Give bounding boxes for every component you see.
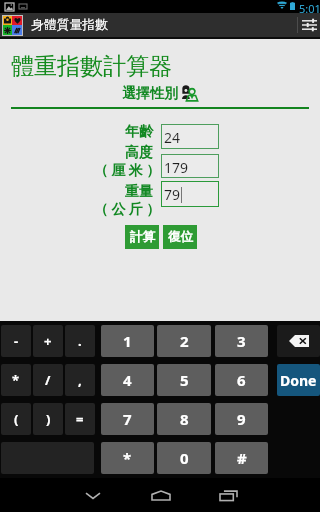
button[interactable]: * (1, 364, 31, 396)
button[interactable]: Back (71, 478, 114, 512)
staticText: / (45, 371, 51, 389)
staticText: . (78, 332, 82, 350)
button[interactable]: / (33, 364, 63, 396)
staticText: 8 (180, 409, 189, 429)
staticText: ( (14, 410, 19, 428)
button[interactable]: = (65, 403, 95, 435)
button[interactable]: 5 (157, 364, 211, 396)
staticText: 5:01 (299, 1, 320, 14)
button[interactable]: 6 (215, 364, 268, 396)
button[interactable]: * (101, 442, 154, 474)
staticText: 9 (237, 409, 246, 429)
staticText: 3 (237, 331, 246, 351)
button[interactable]: Home (139, 478, 182, 512)
button[interactable]: , (65, 364, 95, 396)
button[interactable]: - (1, 325, 31, 357)
button[interactable]: Select gender (118, 83, 206, 104)
button[interactable]: 計算 (125, 225, 159, 249)
staticText: 體重指數計算器 (11, 52, 172, 81)
staticText: 24 (164, 128, 181, 147)
staticText: 年齡 (125, 123, 153, 141)
staticText: , (78, 371, 82, 389)
button[interactable]: Backspace (277, 325, 320, 357)
staticText: 2 (180, 331, 189, 351)
button[interactable]: Settings (298, 13, 320, 37)
button[interactable]: Recent apps (207, 478, 250, 512)
button[interactable]: 0 (157, 442, 211, 474)
staticText: 179 (164, 158, 189, 177)
button[interactable]: 79 (161, 181, 219, 207)
button[interactable]: 7 (101, 403, 154, 435)
button[interactable]: 4 (101, 364, 154, 396)
button[interactable]: 9 (215, 403, 268, 435)
staticText: （公斤） (94, 201, 164, 219)
button[interactable]: + (33, 325, 63, 357)
staticText: 79 (164, 185, 181, 204)
staticText: 復位 (168, 229, 193, 245)
staticText: 1 (123, 331, 132, 351)
staticText: ) (46, 410, 51, 428)
staticText: Done (280, 371, 317, 390)
staticText: 計算 (130, 229, 155, 245)
button[interactable]: 復位 (163, 225, 197, 249)
staticText: - (14, 332, 19, 350)
staticText: 0 (180, 448, 189, 468)
button[interactable]: ) (33, 403, 63, 435)
button[interactable]: . (65, 325, 95, 357)
staticText: # (237, 448, 247, 468)
button[interactable]: 8 (157, 403, 211, 435)
button[interactable]: 3 (215, 325, 268, 357)
button[interactable]: # (215, 442, 268, 474)
staticText: 4 (123, 370, 132, 390)
button[interactable]: 1 (101, 325, 154, 357)
button[interactable]: ( (1, 403, 31, 435)
staticText: 6 (237, 370, 246, 390)
button[interactable]: 179 (161, 154, 219, 178)
staticText: 高度 (125, 144, 153, 162)
staticText: * (12, 371, 20, 389)
staticText: + (44, 332, 52, 350)
button[interactable]: 2 (157, 325, 211, 357)
staticText: 選擇性別 (122, 85, 178, 103)
staticText: * (123, 448, 132, 468)
button[interactable]: 24 (161, 124, 219, 149)
button[interactable]: Done (277, 364, 320, 396)
staticText: 身體質量指數 (31, 17, 108, 33)
staticText: （厘米） (94, 162, 164, 180)
staticText: 5 (180, 370, 189, 390)
staticText: = (76, 410, 84, 428)
staticText: 重量 (125, 183, 153, 201)
staticText: 7 (123, 409, 132, 429)
